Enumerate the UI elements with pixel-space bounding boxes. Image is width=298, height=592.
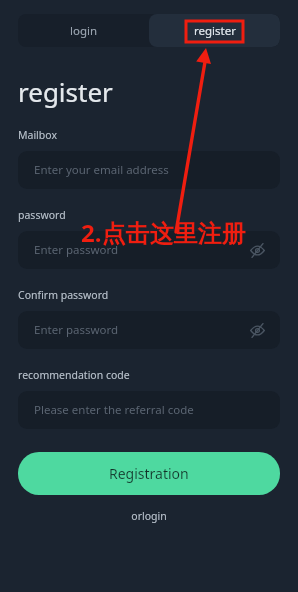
staticText: Registration (109, 464, 189, 483)
button[interactable]: Toggle password visibility (249, 242, 266, 259)
staticText: 2.点击这里注册 (81, 216, 246, 249)
button[interactable]: orlogin (18, 506, 280, 526)
button[interactable]: login (18, 14, 149, 47)
staticText: Enter your email address (34, 162, 169, 178)
button[interactable]: Recommendation code (18, 391, 280, 429)
staticText: login (70, 23, 98, 39)
staticText: Please enter the referral code (34, 402, 194, 418)
staticText: register (18, 74, 113, 109)
staticText: Mailbox (18, 128, 57, 142)
staticText: password (18, 208, 66, 222)
staticText: recommendation code (18, 368, 130, 382)
staticText: register (194, 23, 236, 39)
button[interactable]: Toggle password visibility (249, 322, 266, 339)
staticText: Enter password (34, 242, 119, 258)
button[interactable]: Confirm password (18, 311, 280, 349)
button[interactable]: Password (18, 231, 280, 269)
staticText: orlogin (131, 509, 167, 523)
staticText: Confirm password (18, 288, 109, 302)
button[interactable]: Mailbox (18, 151, 280, 189)
button[interactable]: Registration (18, 452, 280, 495)
button[interactable]: register (149, 14, 280, 47)
staticText: Enter password (34, 322, 119, 338)
